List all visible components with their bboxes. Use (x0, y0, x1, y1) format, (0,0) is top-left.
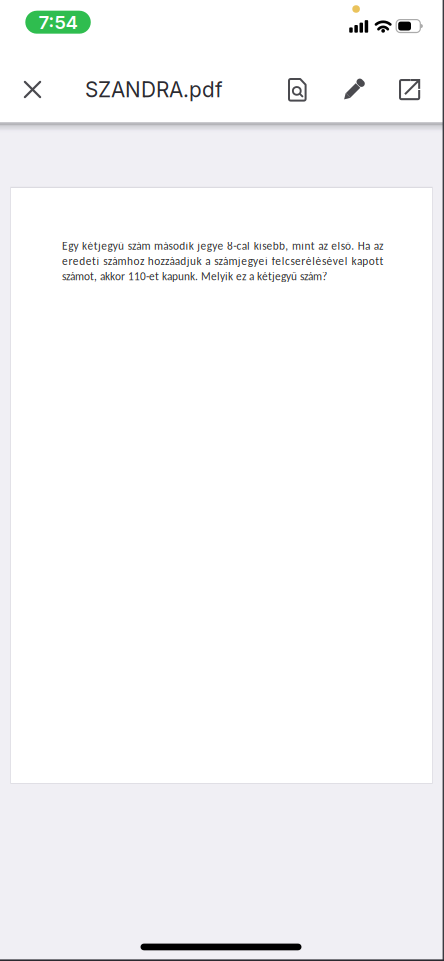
staticText: SZANDRA.pdf (85, 77, 223, 102)
button[interactable]: Markup (343, 79, 364, 101)
staticText: számot, akkor 110-et kapunk. Melyik ez a… (62, 269, 327, 283)
staticText: 7:54 (38, 11, 77, 33)
staticText: eredeti számhoz hozzáadjuk a számjegyei … (62, 254, 384, 268)
button[interactable]: Close (24, 81, 41, 98)
button[interactable]: Share (399, 79, 420, 100)
button[interactable]: Search in document (288, 78, 307, 102)
staticText: Egy kétjegyű szám második jegye 8-cal ki… (62, 239, 383, 253)
